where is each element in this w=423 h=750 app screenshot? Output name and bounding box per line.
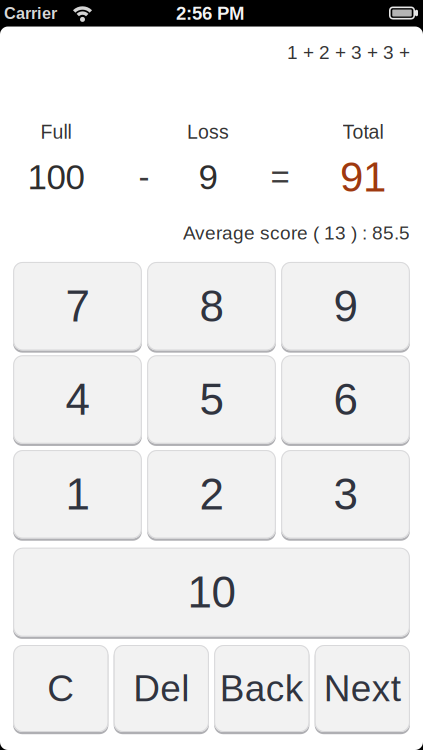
staticText: = <box>270 159 289 195</box>
staticText: 1 + 2 + 3 + 3 + <box>287 42 410 63</box>
staticText: 8 <box>199 282 223 331</box>
staticText: Loss <box>187 121 229 143</box>
staticText: Next <box>324 668 401 709</box>
staticText: Carrier <box>4 4 57 22</box>
staticText: Del <box>133 668 189 709</box>
staticText: 91 <box>340 153 386 200</box>
staticText: Total <box>342 121 383 143</box>
staticText: 9 <box>198 157 217 196</box>
staticText: 2:56 PM <box>176 3 244 24</box>
staticText: 3 <box>333 470 357 519</box>
staticText: 5 <box>199 375 223 424</box>
staticText: 10 <box>187 568 235 617</box>
staticText: 7 <box>65 282 89 331</box>
staticText: 100 <box>27 157 84 196</box>
staticText: 9 <box>333 282 357 331</box>
staticText: - <box>138 159 149 195</box>
staticText: 4 <box>65 375 89 424</box>
staticText: Full <box>40 121 71 143</box>
staticText: Back <box>220 668 304 709</box>
staticText: C <box>47 668 74 709</box>
staticText: Average score ( 13 ) : 85.5 <box>183 222 410 244</box>
staticText: 1 <box>65 470 89 519</box>
staticText: 2 <box>199 470 223 519</box>
staticText: 6 <box>333 375 357 424</box>
